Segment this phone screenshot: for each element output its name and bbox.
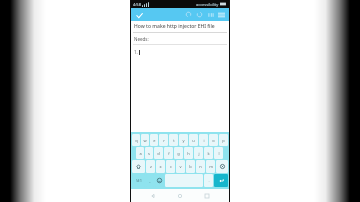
staticText: !#1 bbox=[136, 178, 142, 183]
staticText: , bbox=[149, 178, 151, 183]
staticText: accessibility bbox=[196, 2, 219, 7]
staticText: g bbox=[177, 151, 180, 156]
button[interactable]: Shift bbox=[132, 160, 145, 173]
button[interactable]: Redo bbox=[194, 9, 205, 20]
staticText: . bbox=[208, 178, 210, 183]
button[interactable]: Undo bbox=[183, 9, 194, 20]
button[interactable]: Menu bbox=[216, 9, 227, 20]
button[interactable]: t bbox=[169, 134, 178, 146]
button[interactable]: r bbox=[159, 134, 168, 146]
staticText: p bbox=[222, 138, 225, 143]
staticText: How to make http injector EHI file bbox=[134, 23, 215, 30]
button[interactable]: i bbox=[199, 134, 208, 146]
staticText: y bbox=[182, 138, 185, 143]
staticText: z bbox=[150, 164, 152, 169]
button[interactable]: z bbox=[146, 160, 155, 173]
staticText: b bbox=[189, 164, 192, 169]
staticText: d bbox=[157, 151, 160, 156]
button[interactable]: x bbox=[156, 160, 165, 173]
staticText: j bbox=[198, 151, 200, 156]
button[interactable]: b bbox=[186, 160, 195, 173]
staticText: v bbox=[179, 164, 182, 169]
button[interactable]: . bbox=[204, 174, 213, 187]
staticText: m bbox=[209, 164, 213, 169]
staticText: h bbox=[187, 151, 190, 156]
button[interactable]: k bbox=[204, 147, 213, 159]
staticText: a bbox=[139, 151, 142, 156]
staticText: 4:58 bbox=[133, 2, 141, 7]
staticText: r bbox=[163, 138, 165, 143]
button[interactable]: Back bbox=[148, 191, 158, 201]
staticText: x bbox=[159, 164, 162, 169]
button[interactable]: !#1 bbox=[132, 174, 145, 187]
staticText: k bbox=[207, 151, 210, 156]
button[interactable]: u bbox=[189, 134, 198, 146]
staticText: w bbox=[143, 138, 147, 143]
button[interactable]: How to make http injector EHI file bbox=[131, 21, 229, 132]
button[interactable]: a bbox=[136, 147, 144, 159]
button[interactable]: g bbox=[174, 147, 183, 159]
button[interactable]: q bbox=[132, 134, 140, 146]
staticText: t bbox=[173, 138, 175, 143]
button[interactable]: e bbox=[150, 134, 158, 146]
staticText: e bbox=[153, 138, 156, 143]
button[interactable]: o bbox=[209, 134, 218, 146]
staticText: f bbox=[168, 151, 170, 156]
button[interactable]: f bbox=[164, 147, 173, 159]
button[interactable]: w bbox=[141, 134, 149, 146]
button[interactable]: h bbox=[184, 147, 193, 159]
staticText: c bbox=[170, 164, 172, 169]
button[interactable]: Recents bbox=[202, 191, 212, 201]
button[interactable]: Save bbox=[134, 10, 144, 20]
button[interactable]: p bbox=[219, 134, 228, 146]
button[interactable]: Home bbox=[175, 191, 185, 201]
staticText: s bbox=[148, 151, 150, 156]
button[interactable]: Format bbox=[205, 9, 216, 20]
button[interactable]: y bbox=[179, 134, 188, 146]
staticText: u bbox=[192, 138, 195, 143]
staticText: n bbox=[199, 164, 202, 169]
button[interactable]: v bbox=[176, 160, 185, 173]
button[interactable]: c bbox=[166, 160, 175, 173]
button[interactable]: Enter bbox=[214, 174, 228, 187]
staticText: o bbox=[212, 138, 215, 143]
button[interactable]: l bbox=[214, 147, 223, 159]
staticText: 1. bbox=[134, 49, 138, 55]
staticText: Needs: bbox=[134, 36, 149, 42]
button[interactable]: Emoji bbox=[155, 174, 164, 187]
button[interactable]: d bbox=[154, 147, 163, 159]
button[interactable]: n bbox=[196, 160, 205, 173]
button[interactable]: s bbox=[145, 147, 153, 159]
staticText: q bbox=[135, 138, 138, 143]
staticText: l bbox=[218, 151, 220, 156]
staticText: i bbox=[203, 138, 205, 143]
button[interactable]: m bbox=[206, 160, 215, 173]
button[interactable]: j bbox=[194, 147, 203, 159]
button[interactable]: Backspace bbox=[216, 160, 228, 173]
